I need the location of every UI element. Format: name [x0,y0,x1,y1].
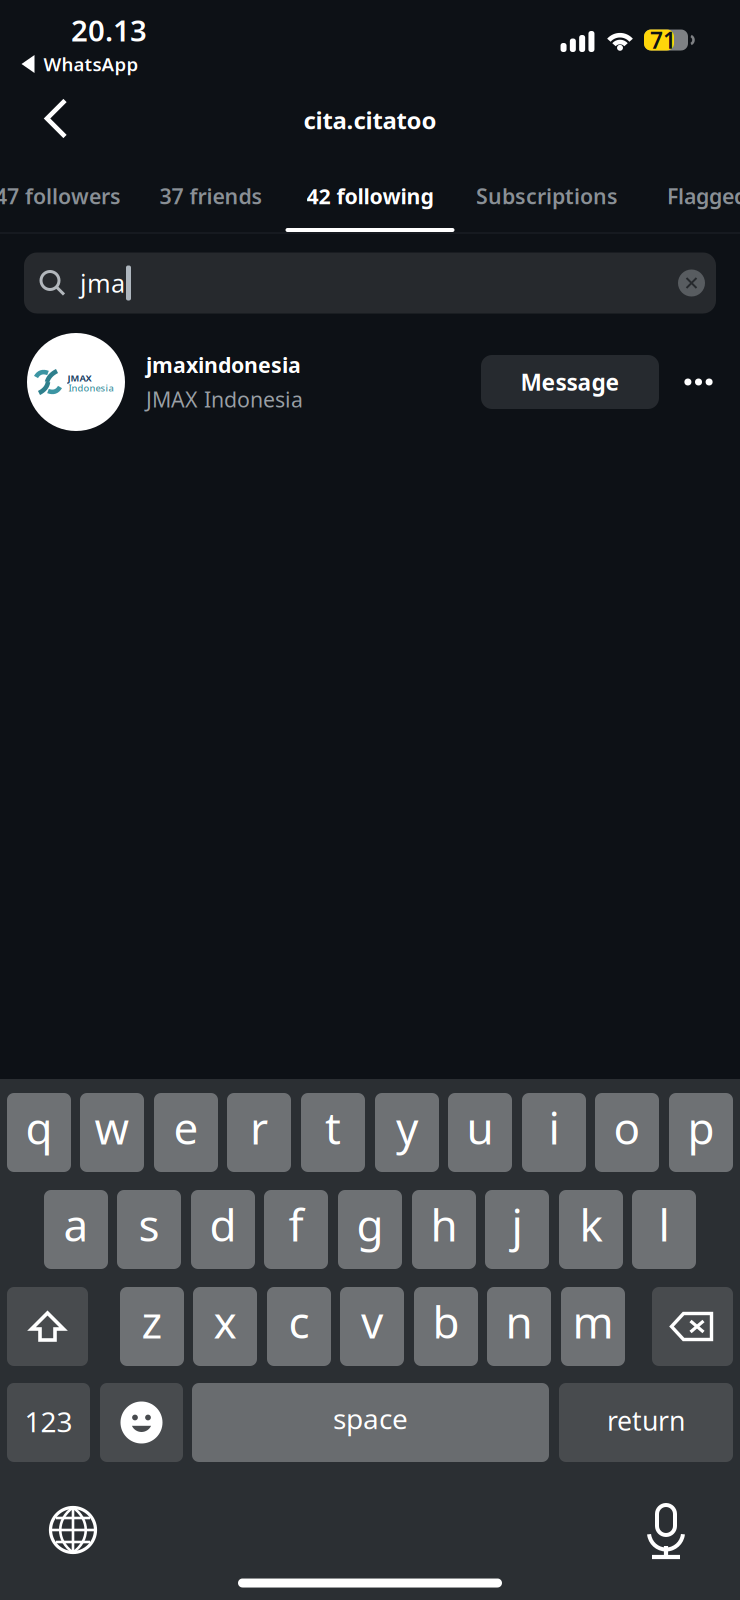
staticText: h [430,1195,457,1254]
staticText: 37 friends [159,182,262,210]
staticText: u [466,1098,493,1157]
button[interactable]: Flagged [632,161,740,231]
button[interactable]: p [669,1093,733,1172]
staticText: j [511,1195,522,1254]
button[interactable]: j [485,1190,549,1269]
button[interactable]: d [191,1190,255,1269]
staticText: a [63,1195,88,1254]
button[interactable]: 37 friends [131,161,291,231]
button[interactable]: f [264,1190,328,1269]
button[interactable]: Dictate [643,1501,689,1559]
button[interactable]: y [375,1093,439,1172]
staticText: q [25,1098,52,1157]
staticText: z [141,1292,162,1351]
button[interactable]: Message [481,355,659,409]
staticText: 123 [24,1403,72,1440]
button[interactable]: v [340,1287,404,1366]
staticText: f [288,1195,303,1254]
button[interactable]: 123 [7,1383,90,1462]
staticText: 47 followers [0,182,121,210]
button[interactable]: o [595,1093,659,1172]
staticText: Message [520,367,619,397]
button[interactable]: m [561,1287,625,1366]
staticText: Indonesia [68,382,113,394]
button[interactable]: t [301,1093,365,1172]
button[interactable]: a [44,1190,108,1269]
button[interactable]: n [487,1287,551,1366]
button[interactable]: z [120,1287,184,1366]
button[interactable]: g [338,1190,402,1269]
staticText: JMAX [67,372,91,384]
staticText: n [505,1292,532,1351]
staticText: t [325,1098,341,1157]
staticText: 42 following [306,182,433,210]
button[interactable]: Next keyboard [49,1506,97,1554]
staticText: r [250,1098,268,1157]
button[interactable]: More options [666,352,730,412]
staticText: p [687,1098,714,1157]
button[interactable]: r [227,1093,291,1172]
staticText: return [607,1403,685,1438]
staticText: cita.citatoo [303,104,436,136]
button[interactable]: space [192,1383,549,1462]
button[interactable]: w [80,1093,144,1172]
staticText: Flagged [667,182,740,210]
staticText: jmaxindonesia [146,351,301,379]
button[interactable]: Shift [7,1287,88,1366]
staticText: k [579,1195,602,1254]
staticText: m [572,1292,613,1351]
button[interactable]: e [154,1093,218,1172]
button[interactable]: Delete [652,1287,733,1366]
staticText: WhatsApp [43,52,138,76]
button[interactable]: Back [27,90,87,146]
button[interactable]: s [117,1190,181,1269]
button[interactable]: c [267,1287,331,1366]
staticText: e [173,1098,198,1157]
staticText: jma [80,266,125,300]
staticText: s [138,1195,159,1254]
staticText: space [333,1400,408,1437]
staticText: v [361,1292,383,1351]
button[interactable]: u [448,1093,512,1172]
button[interactable]: Subscriptions [447,161,647,231]
button[interactable]: i [522,1093,586,1172]
button[interactable]: 47 followers [0,161,148,231]
staticText: i [548,1098,559,1157]
button[interactable]: b [414,1287,478,1366]
button[interactable]: l [632,1190,696,1269]
button[interactable]: JMAX [27,327,477,437]
staticText: o [613,1098,640,1157]
staticText: l [658,1195,669,1254]
button[interactable]: Clear text [678,269,705,296]
staticText: c [288,1292,309,1351]
button[interactable]: return [559,1383,733,1462]
staticText: JMAX Indonesia [146,385,303,413]
staticText: x [213,1292,236,1351]
staticText: y [396,1098,418,1157]
staticText: 20.13 [71,10,147,49]
button[interactable]: x [193,1287,257,1366]
staticText: Subscriptions [476,182,618,210]
button[interactable]: 42 following [275,161,465,231]
staticText: w [94,1098,129,1157]
button[interactable]: h [412,1190,476,1269]
staticText: 71 [650,25,676,55]
staticText: d [209,1195,236,1254]
staticText: g [356,1195,383,1254]
staticText: b [432,1292,459,1351]
button[interactable]: q [7,1093,71,1172]
button[interactable]: Emoji [100,1383,183,1462]
button[interactable]: k [559,1190,623,1269]
